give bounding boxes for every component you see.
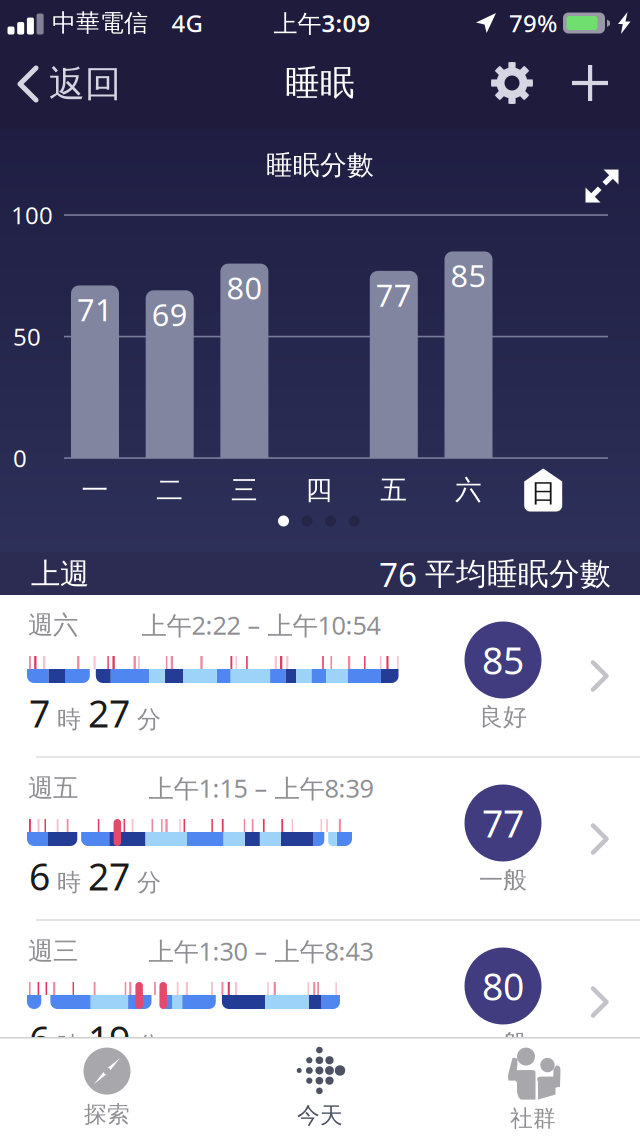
button[interactable]: 週五: [0, 758, 640, 921]
staticText: 一般: [479, 865, 527, 895]
staticText: 4G: [171, 7, 202, 39]
staticText: 一般: [479, 1028, 527, 1058]
staticText: 77: [376, 274, 412, 315]
staticText: 71: [77, 289, 113, 330]
staticText: 上午1:15 – 上午8:39: [148, 771, 373, 805]
staticText: 76: [379, 552, 417, 596]
staticText: 77: [482, 798, 524, 848]
staticText: 上午1:30 – 上午8:43: [148, 934, 373, 968]
button[interactable]: 社群: [426, 1039, 639, 1136]
staticText: 19: [88, 1014, 130, 1064]
staticText: 7: [29, 688, 50, 738]
staticText: 85: [450, 255, 486, 296]
staticText: 平均睡眠分數: [425, 555, 611, 593]
staticText: 返回: [49, 62, 121, 106]
staticText: 時: [50, 1031, 88, 1060]
staticText: 日: [531, 477, 556, 508]
staticText: 週五: [28, 772, 78, 803]
staticText: 三: [231, 474, 258, 506]
staticText: 分: [130, 1031, 161, 1060]
staticText: 今天: [297, 1102, 343, 1129]
staticText: 分: [130, 868, 161, 897]
staticText: 四: [306, 474, 333, 506]
staticText: 80: [482, 961, 524, 1011]
staticText: 社群: [510, 1105, 556, 1132]
button[interactable]: Settings: [479, 50, 545, 116]
staticText: 中華電信: [52, 8, 148, 38]
staticText: 二: [156, 474, 183, 506]
staticText: 上午2:22 – 上午10:54: [141, 608, 380, 642]
staticText: 80: [226, 267, 262, 308]
staticText: 週三: [28, 935, 78, 966]
staticText: 分: [130, 705, 161, 734]
staticText: 六: [455, 474, 482, 506]
staticText: 85: [482, 635, 524, 685]
staticText: 27: [88, 688, 130, 738]
button[interactable]: 今天: [213, 1039, 426, 1136]
staticText: 27: [88, 851, 130, 901]
staticText: 上週: [31, 556, 89, 592]
staticText: 睡眠分數: [266, 149, 374, 181]
button[interactable]: 探索: [0, 1039, 213, 1136]
staticText: 6: [29, 851, 50, 901]
staticText: 探索: [84, 1101, 130, 1128]
staticText: 一: [81, 474, 108, 506]
staticText: 時: [50, 705, 88, 734]
staticText: 69: [152, 294, 188, 335]
staticText: 週六: [28, 609, 78, 640]
button[interactable]: 週三: [0, 921, 640, 1084]
staticText: 時: [50, 868, 88, 897]
staticText: 上午3:09: [273, 7, 370, 39]
staticText: 50: [13, 321, 41, 352]
staticText: 五: [380, 474, 407, 506]
staticText: 0: [13, 442, 27, 474]
button[interactable]: Add: [557, 50, 623, 116]
staticText: 6: [29, 1014, 50, 1064]
button[interactable]: Expand chart: [574, 158, 630, 214]
staticText: 良好: [479, 702, 527, 732]
button[interactable]: 返回: [0, 51, 160, 117]
staticText: 睡眠: [285, 62, 355, 104]
staticText: 79%: [509, 7, 557, 39]
staticText: 100: [11, 199, 53, 231]
button[interactable]: 週六: [0, 595, 640, 758]
